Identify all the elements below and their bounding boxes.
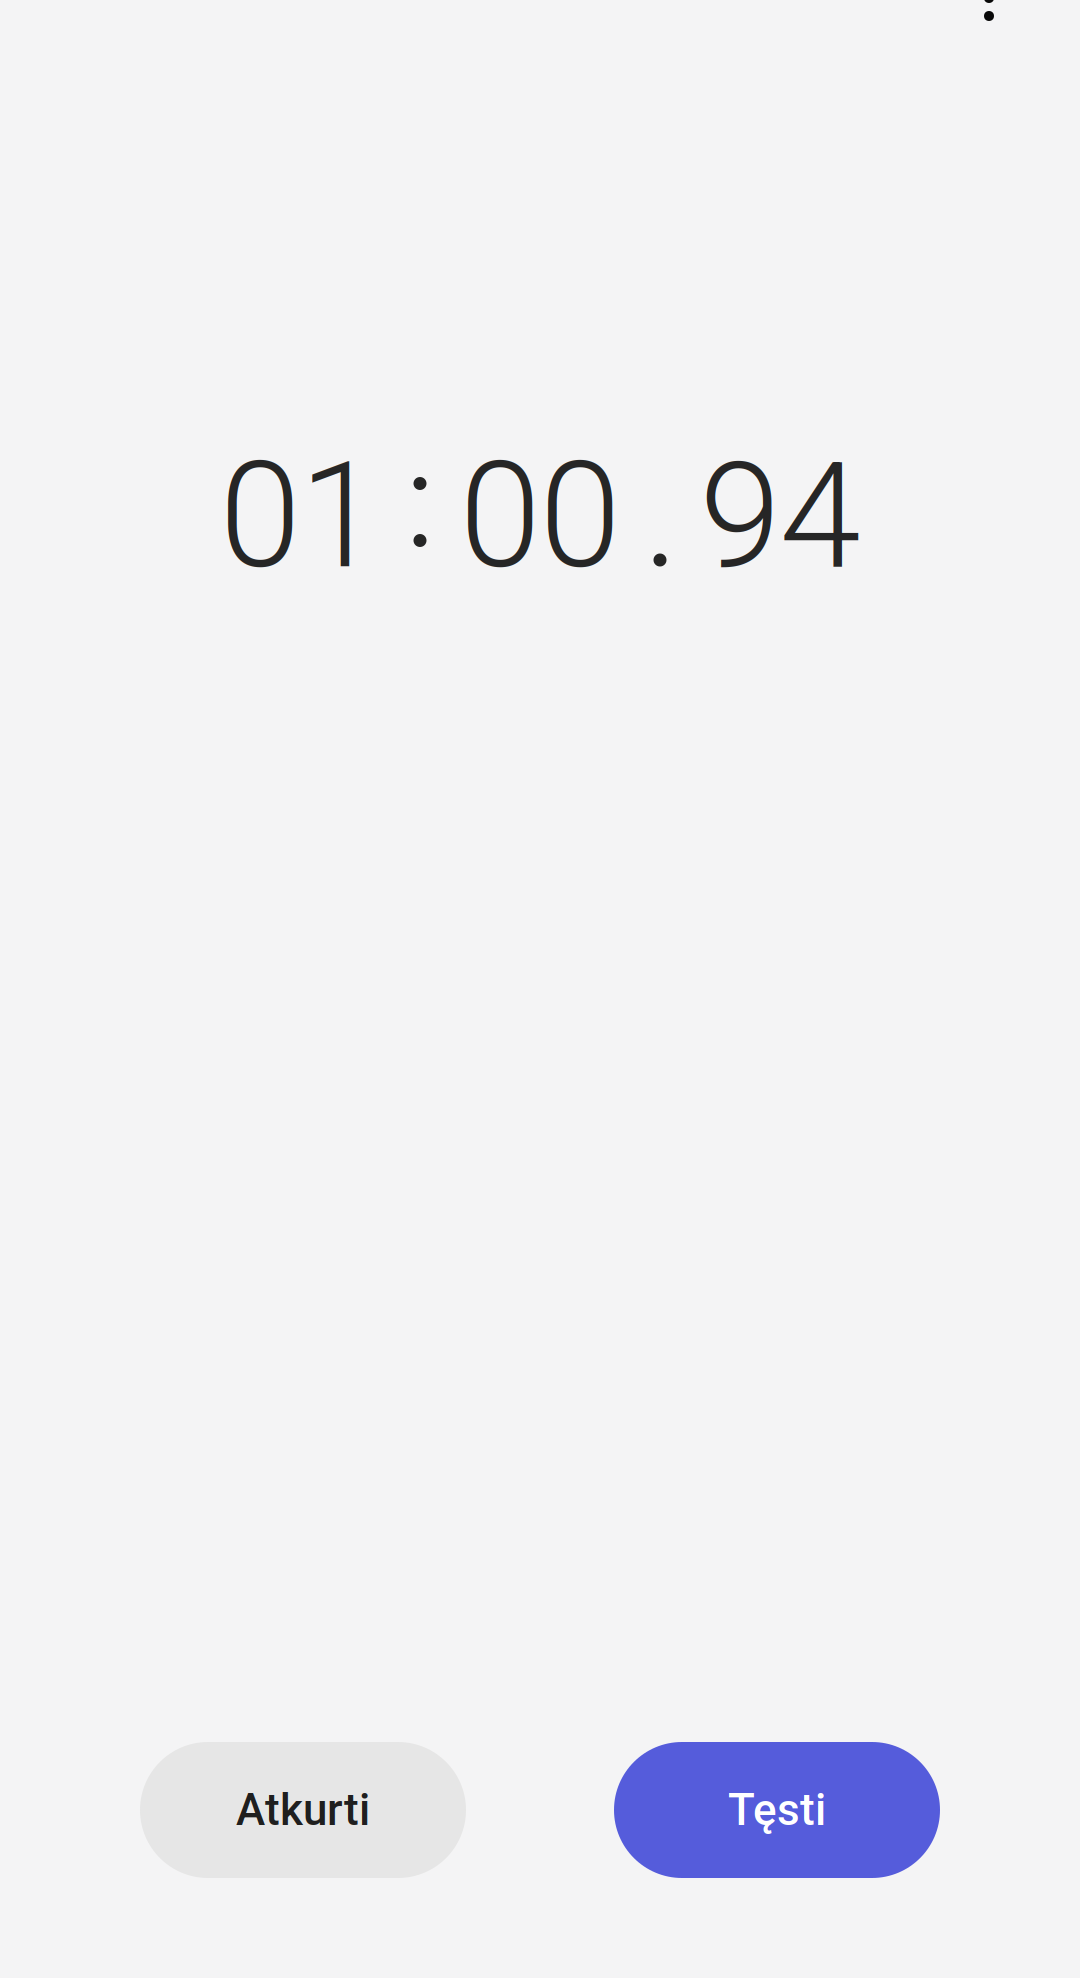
staticText: 4 bbox=[779, 430, 860, 602]
button[interactable]: Tęsti bbox=[614, 1742, 940, 1878]
button[interactable]: More options bbox=[966, 0, 1012, 21]
button[interactable]: Atkurti bbox=[140, 1742, 466, 1878]
staticText: 0 bbox=[459, 430, 540, 602]
staticText: 0 bbox=[539, 430, 620, 602]
staticText: 0 bbox=[219, 430, 300, 602]
staticText: Tęsti bbox=[728, 1784, 826, 1836]
staticText: 9 bbox=[699, 430, 780, 602]
staticText: 1 bbox=[299, 430, 380, 602]
staticText: Atkurti bbox=[236, 1784, 370, 1836]
